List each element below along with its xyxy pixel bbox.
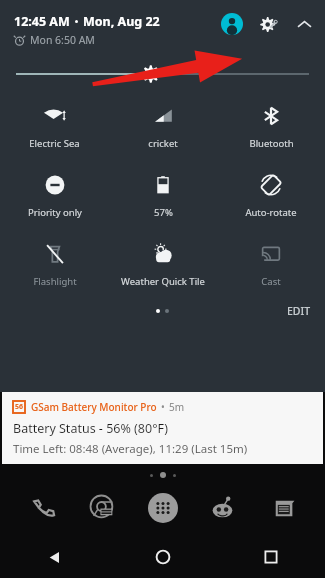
staticText: Time Left: 08:48 (Average), 11:29 (Last … xyxy=(13,441,248,457)
staticText: 56 xyxy=(15,402,24,412)
button[interactable]: Bluetooth xyxy=(217,103,325,150)
staticText: EDIT xyxy=(287,304,311,318)
staticText: • xyxy=(161,400,165,414)
button[interactable]: Brightness xyxy=(16,63,309,85)
button[interactable]: 57% xyxy=(109,172,217,219)
button[interactable]: Flashlight xyxy=(0,241,109,288)
button[interactable]: News xyxy=(253,486,313,530)
button[interactable]: Back xyxy=(0,536,109,578)
button[interactable]: Phone xyxy=(12,486,73,530)
button[interactable]: Cast xyxy=(217,241,325,288)
button[interactable]: Recents xyxy=(217,536,325,578)
staticText: GSam Battery Monitor Pro xyxy=(31,400,157,414)
staticText: Battery Status - 56% (80°F) xyxy=(13,420,168,437)
staticText: Weather Quick Tile xyxy=(121,275,205,288)
staticText: Cast xyxy=(261,275,281,288)
button[interactable]: All apps xyxy=(133,486,193,530)
staticText: 5m xyxy=(169,400,185,414)
button[interactable]: Chrome Beta xyxy=(73,486,133,530)
button[interactable]: Auto-rotate xyxy=(217,172,325,219)
button[interactable]: Collapse xyxy=(293,13,315,35)
button[interactable]: Electric Sea xyxy=(0,103,109,150)
button[interactable]: Home xyxy=(109,536,217,578)
staticText: Mon, Aug 22 xyxy=(83,13,160,30)
button[interactable]: EDIT xyxy=(287,304,311,318)
staticText: cricket xyxy=(148,137,178,150)
staticText: Mon 6:50 AM xyxy=(30,33,95,47)
staticText: 57% xyxy=(154,206,173,219)
button[interactable]: cricket xyxy=(109,103,217,150)
staticText: Auto-rotate xyxy=(245,206,297,219)
staticText: Electric Sea xyxy=(29,137,80,150)
staticText: Bluetooth xyxy=(249,137,294,150)
staticText: Priority only xyxy=(28,206,82,219)
button[interactable]: Weather Quick Tile xyxy=(109,241,217,288)
button[interactable]: Reddit xyxy=(193,486,253,530)
button[interactable]: 56 xyxy=(2,392,323,464)
button[interactable]: User profile xyxy=(221,13,243,35)
staticText: 12:45 AM xyxy=(14,13,70,30)
staticText: Flashlight xyxy=(33,275,77,288)
button[interactable]: Settings xyxy=(257,13,281,37)
button[interactable]: Priority only xyxy=(0,172,109,219)
